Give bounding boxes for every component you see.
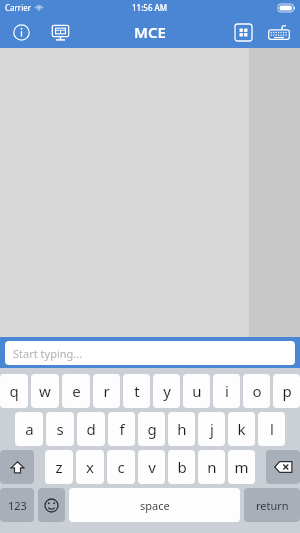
staticText: p (282, 381, 292, 401)
button[interactable]: Info (8, 19, 34, 45)
button[interactable]: Emoji (38, 488, 65, 522)
staticText: c (117, 457, 125, 477)
button[interactable]: a (15, 412, 43, 446)
button[interactable]: Keyboard (264, 17, 294, 47)
staticText: i (225, 381, 229, 401)
button[interactable]: i (213, 374, 240, 408)
button[interactable]: y (153, 374, 180, 408)
button[interactable]: l (258, 412, 285, 446)
staticText: q (9, 381, 19, 401)
button[interactable]: Shift (0, 450, 34, 484)
staticText: e (72, 381, 81, 401)
button[interactable]: f (108, 412, 135, 446)
button[interactable]: w (31, 374, 59, 408)
staticText: 123 (8, 498, 27, 513)
staticText: t (134, 381, 140, 401)
staticText: space (140, 498, 170, 513)
staticText: a (25, 419, 34, 439)
staticText: f (119, 419, 125, 439)
staticText: w (39, 381, 51, 401)
button[interactable]: e (62, 374, 90, 408)
button[interactable]: t (123, 374, 150, 408)
button[interactable]: Start typing... (5, 341, 295, 365)
button[interactable]: v (138, 450, 165, 484)
button[interactable]: Display (47, 19, 73, 45)
button[interactable]: Grid (230, 19, 256, 45)
staticText: v (148, 457, 156, 477)
staticText: m (234, 457, 249, 477)
staticText: u (192, 381, 202, 401)
button[interactable]: x (76, 450, 104, 484)
staticText: MCE (134, 22, 166, 42)
staticText: d (86, 419, 96, 439)
button[interactable]: u (183, 374, 210, 408)
staticText: g (147, 419, 157, 439)
staticText: h (177, 419, 187, 439)
staticText: z (55, 457, 63, 477)
button[interactable]: return (244, 488, 300, 522)
button[interactable]: p (273, 374, 300, 408)
button[interactable]: c (107, 450, 135, 484)
button[interactable]: n (198, 450, 225, 484)
staticText: o (252, 381, 262, 401)
button[interactable]: b (168, 450, 195, 484)
staticText: l (270, 419, 274, 439)
button[interactable]: s (46, 412, 74, 446)
button[interactable]: z (45, 450, 73, 484)
staticText: k (237, 419, 246, 439)
staticText: s (56, 419, 64, 439)
staticText: y (163, 381, 171, 401)
button[interactable]: o (243, 374, 270, 408)
staticText: r (103, 381, 110, 401)
button[interactable]: q (0, 374, 28, 408)
staticText: Start typing... (13, 346, 83, 361)
staticText: 11:56 AM (132, 2, 168, 13)
staticText: return (256, 498, 289, 513)
button[interactable]: h (168, 412, 195, 446)
staticText: b (177, 457, 187, 477)
button[interactable]: k (228, 412, 255, 446)
button[interactable]: Delete (266, 450, 300, 484)
staticText: x (86, 457, 94, 477)
button[interactable]: g (138, 412, 165, 446)
button[interactable]: 123 (0, 488, 34, 522)
button[interactable]: d (77, 412, 105, 446)
staticText: j (210, 419, 214, 439)
button[interactable]: r (93, 374, 120, 408)
button[interactable]: j (198, 412, 225, 446)
button[interactable]: m (228, 450, 255, 484)
staticText: Carrier (5, 2, 32, 13)
button[interactable]: space (69, 488, 240, 522)
staticText: n (207, 457, 217, 477)
